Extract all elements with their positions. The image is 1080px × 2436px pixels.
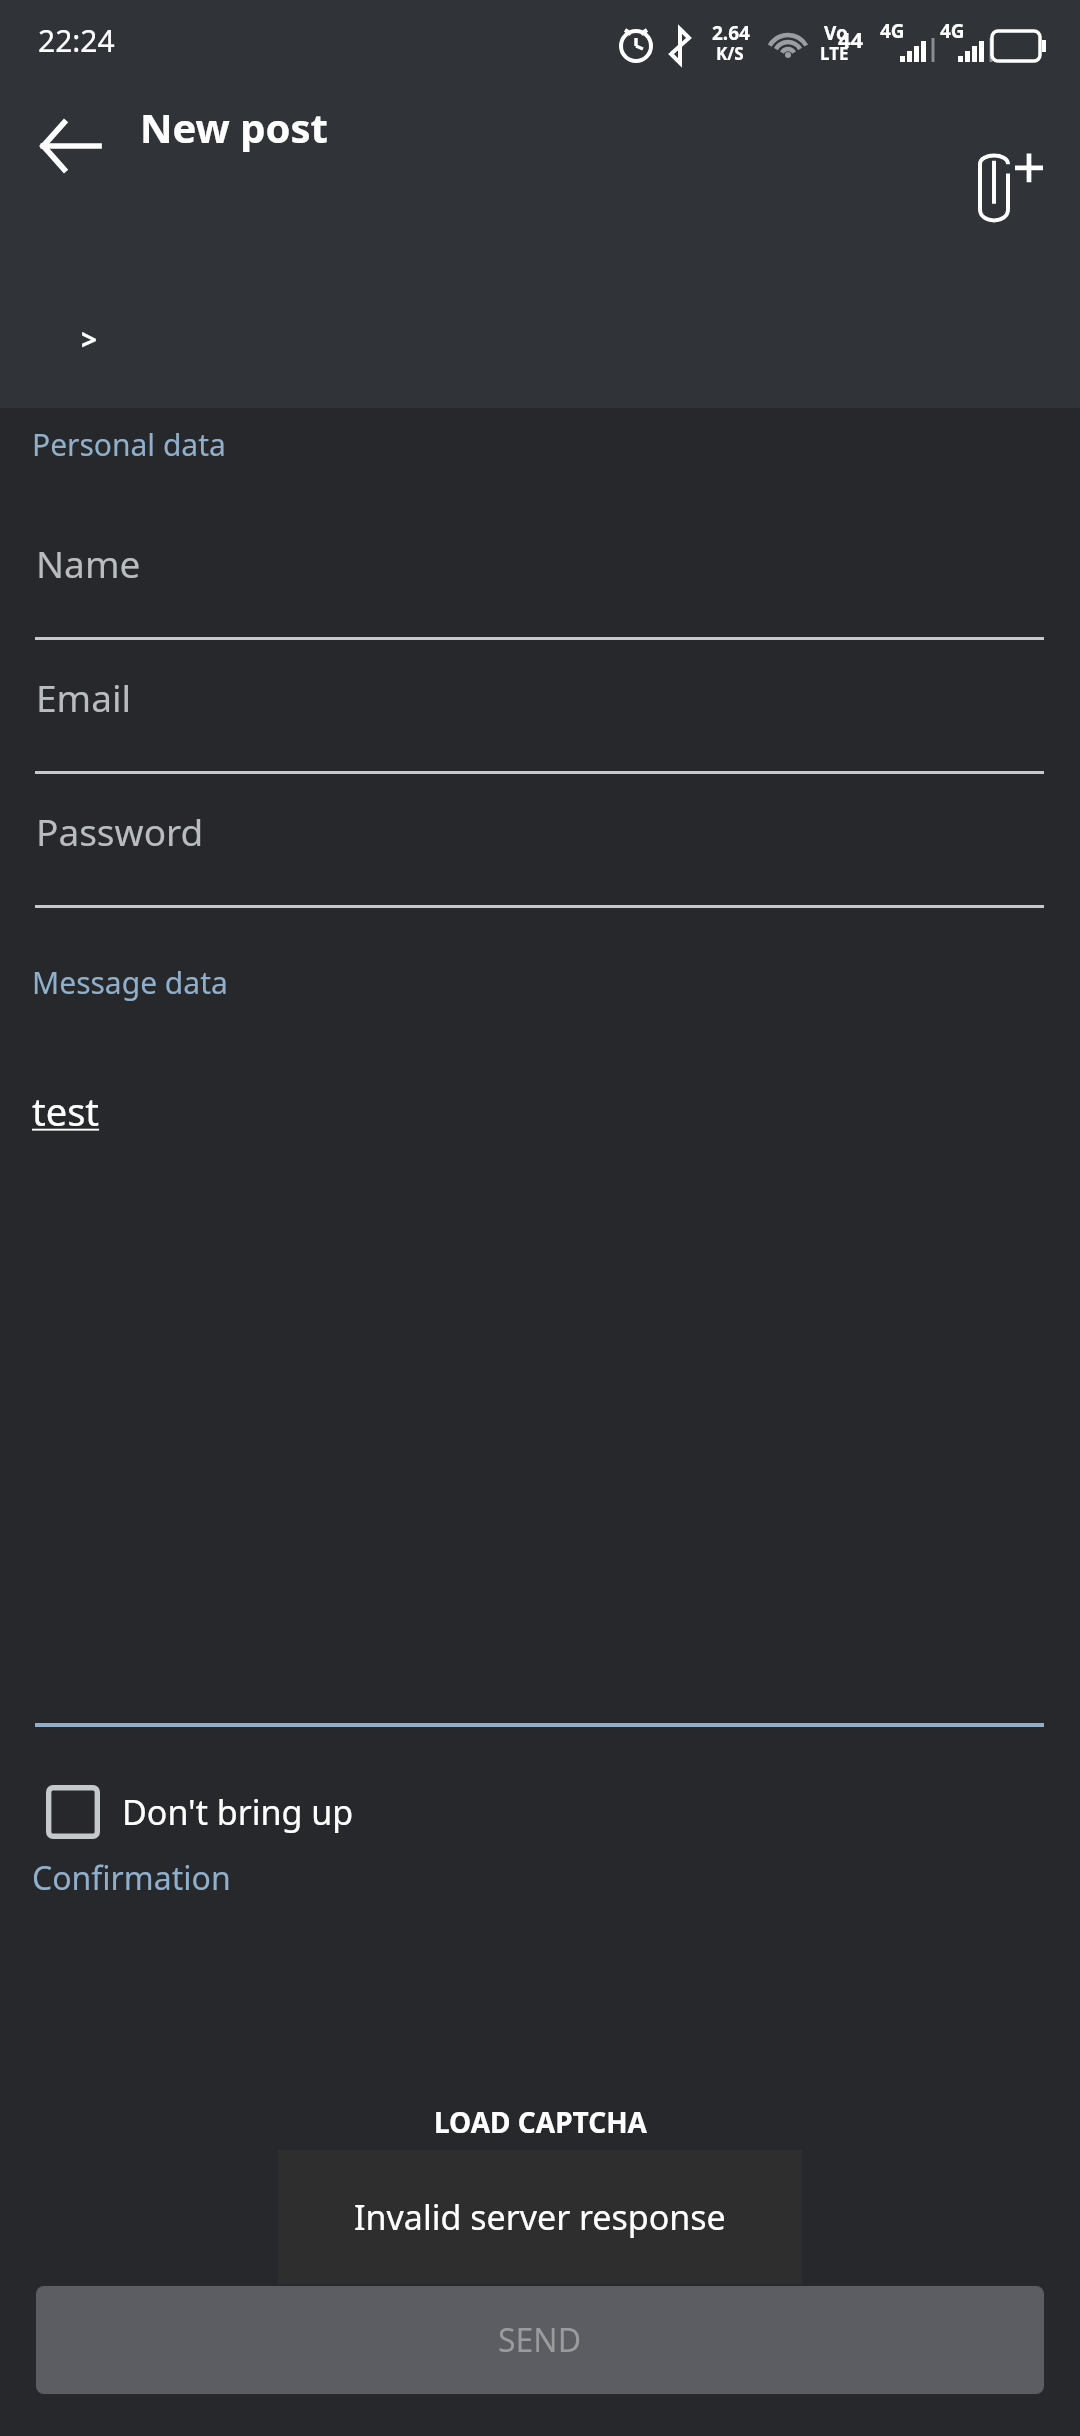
button[interactable]: Attach file	[958, 138, 1058, 238]
staticText: 44	[838, 24, 864, 54]
staticText: Name	[36, 538, 141, 588]
staticText: Invalid server response	[354, 2194, 726, 2240]
staticText: 22:24	[38, 20, 115, 61]
staticText: Confirmation	[32, 1856, 231, 1900]
staticText: Password	[36, 806, 204, 856]
button[interactable]: Password	[34, 796, 1044, 870]
staticText: 4G	[880, 18, 905, 44]
staticText: Don't bring up	[122, 1789, 354, 1835]
staticText: New post	[140, 100, 328, 154]
button[interactable]: SEND	[36, 2286, 1044, 2394]
button[interactable]: Name	[34, 528, 1044, 602]
button[interactable]: Email	[34, 662, 1044, 736]
staticText: SEND	[498, 2318, 582, 2362]
button[interactable]: >	[48, 302, 130, 376]
staticText: test	[32, 1085, 100, 1137]
button[interactable]: Don't bring up	[20, 1772, 420, 1852]
staticText: Email	[36, 672, 132, 722]
staticText: >	[81, 320, 98, 358]
staticText: LOAD CAPTCHA	[434, 2103, 647, 2141]
staticText: Personal data	[32, 424, 226, 465]
button[interactable]: LOAD CAPTCHA	[0, 2090, 1080, 2154]
staticText: Vo	[824, 20, 848, 46]
staticText: Message data	[32, 962, 228, 1003]
staticText: LTE	[820, 42, 849, 65]
staticText: 2.64	[712, 20, 750, 46]
button[interactable]: Back	[20, 96, 120, 196]
button[interactable]: test	[32, 1085, 100, 1137]
staticText: K/S	[716, 42, 744, 65]
staticText: 4G	[940, 18, 965, 44]
